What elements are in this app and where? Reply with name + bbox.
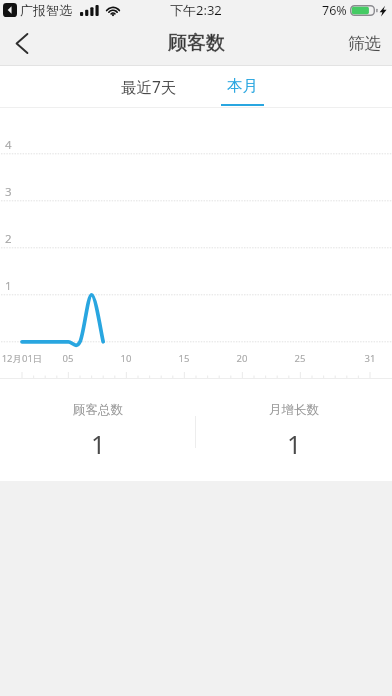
staticText: 下午2:32 <box>170 1 222 19</box>
staticText: 1 <box>5 278 12 294</box>
staticText: 4 <box>5 137 12 153</box>
staticText: 25 <box>277 352 323 365</box>
staticText: 月增长数 <box>269 402 319 418</box>
staticText: 最近7天 <box>121 76 177 97</box>
staticText: 1 <box>91 427 106 461</box>
staticText: 10 <box>103 352 149 365</box>
staticText: 顾客数 <box>168 31 225 55</box>
staticText: 20 <box>219 352 265 365</box>
button[interactable]: Back <box>0 20 44 66</box>
button[interactable]: 本月 <box>194 66 290 108</box>
staticText: 顾客数 <box>168 31 225 55</box>
staticText: 31 <box>347 352 392 365</box>
staticText: 顾客总数 <box>73 402 123 418</box>
staticText: 12月01日 <box>0 352 45 365</box>
button[interactable]: 顾客总数 <box>0 382 195 481</box>
staticText: 1 <box>287 427 302 461</box>
staticText: 3 <box>5 184 12 200</box>
staticText: 本月 <box>227 76 258 96</box>
staticText: 广报智选 <box>20 2 72 18</box>
staticText: 76% <box>322 2 347 19</box>
staticText: 05 <box>45 352 91 365</box>
staticText: 15 <box>161 352 207 365</box>
button[interactable]: 筛选 <box>334 20 392 66</box>
button[interactable]: 最近7天 <box>101 66 197 108</box>
button[interactable]: 月增长数 <box>196 382 392 481</box>
staticText: 筛选 <box>348 33 381 54</box>
staticText: 2 <box>5 231 12 247</box>
